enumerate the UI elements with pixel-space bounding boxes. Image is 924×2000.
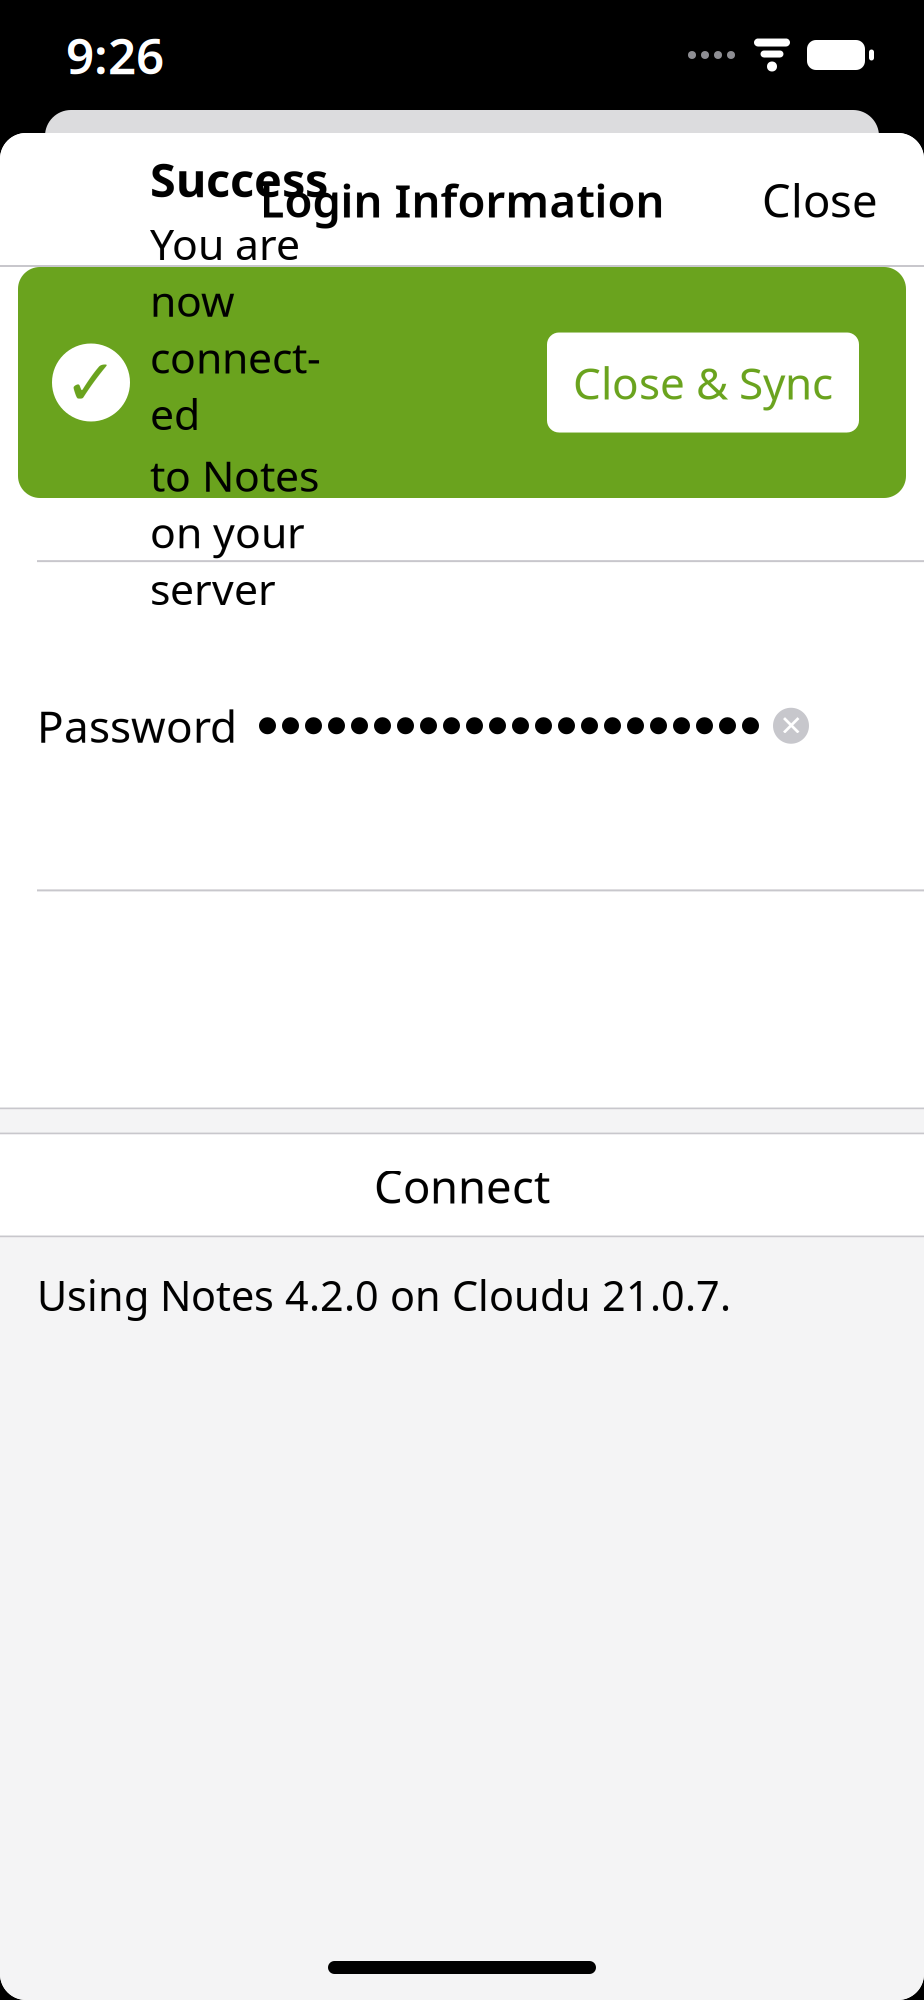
staticText: Login Information: [259, 170, 664, 230]
staticText: Close: [762, 170, 878, 230]
staticText: ✕: [779, 710, 802, 742]
button[interactable]: Username: [0, 345, 924, 448]
button[interactable]: Connect: [0, 1134, 924, 1237]
staticText: apple: [259, 367, 374, 426]
staticText: Success: [150, 148, 328, 210]
staticText: Password: [37, 696, 237, 755]
staticText: 9:26: [66, 22, 164, 88]
staticText: You are now connected: [150, 215, 321, 442]
staticText: Username: [37, 367, 251, 426]
staticText: Connect: [374, 1156, 550, 1216]
staticText: ✓: [64, 346, 118, 419]
staticText: Close & Sync: [573, 353, 833, 412]
staticText: Using Notes 4.2.0 on Cloudu 21.0.7.: [37, 1267, 731, 1322]
button[interactable]: Close: [738, 152, 902, 248]
button[interactable]: Close & Sync: [547, 332, 859, 432]
staticText: to Notes on your server: [150, 447, 319, 617]
button[interactable]: Password: [0, 674, 924, 777]
